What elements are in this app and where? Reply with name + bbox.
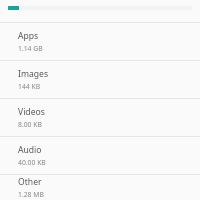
button[interactable]: Videos storage, 8.00 KB — [0, 99, 200, 136]
staticText: 144 KB — [18, 82, 41, 91]
button[interactable]: Images storage, 144 KB — [0, 61, 200, 98]
button[interactable]: Audio storage, 40.00 KB — [0, 137, 200, 174]
staticText: 8.00 KB — [18, 120, 42, 129]
staticText: 1.28 MB — [18, 190, 44, 199]
staticText: Other — [18, 176, 42, 188]
staticText: 1.14 GB — [18, 44, 43, 53]
staticText: Videos — [18, 106, 45, 118]
staticText: 40.00 KB — [18, 158, 46, 167]
staticText: Audio — [18, 144, 42, 156]
button[interactable]: Other storage, 1.28 MB — [0, 175, 200, 200]
button[interactable]: Apps storage, 1.14 GB — [0, 23, 200, 60]
staticText: Apps — [18, 30, 39, 42]
staticText: Images — [18, 68, 49, 80]
